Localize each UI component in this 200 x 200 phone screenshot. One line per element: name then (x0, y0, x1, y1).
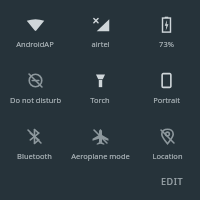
button[interactable]: AndroidAP (16, 9, 54, 53)
button[interactable]: Aeroplane mode (71, 121, 130, 165)
button[interactable]: Bluetooth (17, 121, 52, 165)
staticText: Location (152, 151, 183, 161)
staticText: Torch (90, 95, 110, 105)
button[interactable]: Location (152, 121, 183, 165)
staticText: AndroidAP (16, 39, 54, 49)
button[interactable]: Do not disturb (10, 65, 61, 109)
button[interactable]: Portrait (153, 65, 180, 109)
button[interactable]: Torch (90, 65, 110, 109)
button[interactable]: airtel (91, 9, 110, 53)
staticText: EDIT (161, 175, 184, 187)
staticText: airtel (91, 39, 110, 49)
staticText: 73% (159, 39, 174, 49)
staticText: Bluetooth (17, 151, 52, 161)
button[interactable]: 73% (157, 9, 176, 53)
button[interactable]: EDIT (157, 172, 188, 190)
staticText: Aeroplane mode (71, 151, 130, 161)
staticText: Portrait (153, 95, 180, 105)
staticText: Do not disturb (10, 95, 61, 105)
